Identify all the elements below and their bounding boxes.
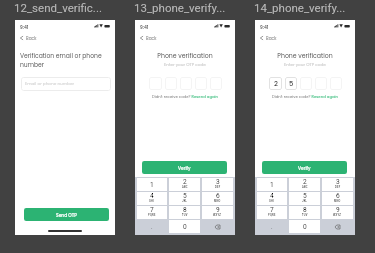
button[interactable]: 6	[202, 192, 233, 205]
staticText: Back	[146, 35, 157, 41]
button[interactable]: Back	[20, 34, 37, 42]
staticText: ABC	[302, 186, 308, 189]
staticText: 8	[183, 206, 187, 214]
button[interactable]	[165, 77, 177, 90]
button[interactable]: 7	[257, 206, 287, 219]
button[interactable]: 5	[289, 192, 320, 205]
staticText: JKL	[182, 200, 188, 203]
staticText: PQRS	[148, 214, 156, 217]
button[interactable]: 0	[169, 220, 200, 233]
staticText: 0	[303, 223, 307, 231]
staticText: 6	[336, 192, 340, 200]
button[interactable]: 2	[169, 178, 200, 191]
button[interactable]: 3	[202, 178, 233, 191]
staticText: Send OTP	[56, 212, 77, 218]
staticText: 1	[150, 181, 154, 189]
button[interactable]	[300, 77, 312, 90]
button[interactable]: 4	[137, 192, 167, 205]
button[interactable]: Backspace	[322, 220, 353, 233]
button[interactable]: 6	[322, 192, 353, 205]
staticText: 14_phone_verify...	[254, 1, 362, 14]
staticText: 5	[303, 192, 307, 200]
button[interactable]: 2	[289, 178, 320, 191]
staticText: 1	[270, 181, 274, 189]
button[interactable]: 9	[202, 206, 233, 219]
button[interactable]: 8	[169, 206, 200, 219]
button[interactable]: 1	[137, 178, 167, 191]
staticText: WXYZ	[333, 214, 342, 217]
staticText: .	[271, 223, 273, 230]
staticText: Phone verification	[135, 51, 235, 60]
staticText: 2	[274, 79, 278, 89]
button[interactable]: 9	[322, 206, 353, 219]
staticText: Verification email or phone number	[20, 52, 110, 69]
staticText: JKL	[302, 200, 308, 203]
button[interactable]	[195, 77, 207, 90]
staticText: 3	[216, 178, 220, 186]
button[interactable]: 1	[257, 178, 287, 191]
staticText: 7	[150, 206, 154, 214]
button[interactable]: Send OTP	[24, 208, 109, 221]
staticText: Enter your OTP code	[255, 62, 355, 68]
staticText: 5	[183, 192, 187, 200]
staticText: 0	[183, 223, 187, 231]
staticText: 4	[150, 192, 154, 200]
staticText: 4	[270, 192, 274, 200]
staticText: 2	[183, 178, 187, 186]
staticText: 9	[216, 206, 220, 214]
staticText: 7	[270, 206, 274, 214]
staticText: 2	[303, 178, 307, 186]
button[interactable]	[149, 77, 162, 90]
staticText: 9	[336, 206, 340, 214]
staticText: WXYZ	[213, 214, 222, 217]
button[interactable]: Verify	[142, 161, 227, 174]
staticText: MNO	[214, 200, 221, 203]
button[interactable]	[330, 77, 342, 90]
staticText: Back	[26, 35, 37, 41]
button[interactable]: 2	[269, 77, 282, 90]
staticText: ABC	[182, 186, 188, 189]
button[interactable]	[210, 77, 222, 90]
button[interactable]: Verify	[262, 161, 347, 174]
staticText: 3	[336, 178, 340, 186]
staticText: GHI	[269, 200, 275, 203]
staticText: Verify	[298, 165, 311, 171]
button[interactable]: Back	[140, 34, 157, 42]
staticText: .	[151, 223, 153, 230]
staticText: 9:41	[20, 24, 29, 30]
staticText: 8	[303, 206, 307, 214]
staticText: 5	[289, 79, 294, 89]
staticText: Didn't receive code? Resend again	[255, 94, 355, 99]
staticText: 6	[216, 192, 220, 200]
button[interactable]: 8	[289, 206, 320, 219]
staticText: Verify	[178, 165, 191, 171]
staticText: GHI	[149, 200, 155, 203]
button[interactable]	[180, 77, 192, 90]
button[interactable]: 5	[169, 192, 200, 205]
staticText: DEF	[215, 186, 221, 189]
button[interactable]: Email or phone number	[21, 77, 111, 91]
button[interactable]: 7	[137, 206, 167, 219]
staticText: DEF	[335, 186, 341, 189]
staticText: 9:41	[140, 24, 149, 30]
staticText: TUV	[182, 214, 188, 217]
staticText: 12_send_verific...	[14, 1, 122, 14]
staticText: TUV	[302, 214, 308, 217]
button[interactable]: 0	[289, 220, 320, 233]
staticText: 9:41	[260, 24, 269, 30]
staticText: Didn't receive code? Resend again	[135, 94, 235, 99]
staticText: 13_phone_verify...	[134, 1, 242, 14]
staticText: MNO	[334, 200, 341, 203]
staticText: Email or phone number	[25, 81, 75, 87]
staticText: Phone verification	[255, 51, 355, 60]
button[interactable]: Backspace	[202, 220, 233, 233]
button[interactable]: 3	[322, 178, 353, 191]
staticText: Back	[266, 35, 277, 41]
button[interactable]: 4	[257, 192, 287, 205]
button[interactable]	[315, 77, 327, 90]
staticText: Enter your OTP code	[135, 62, 235, 68]
button[interactable]: 5	[285, 77, 297, 90]
button[interactable]: Back	[260, 34, 277, 42]
